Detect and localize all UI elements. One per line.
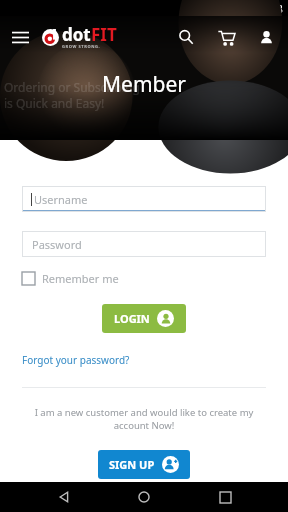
button[interactable]: SIGN UP	[98, 450, 190, 479]
staticText: SIGN UP	[109, 457, 155, 472]
button[interactable]: Remember me	[22, 271, 119, 286]
staticText: is Quick and Easy!	[4, 95, 105, 111]
button[interactable]: LOGIN	[102, 304, 186, 333]
button[interactable]: Account	[246, 17, 286, 57]
staticText: LOGIN	[114, 311, 150, 326]
staticText: 8:28	[261, 1, 283, 16]
button[interactable]: Recent apps	[208, 482, 242, 512]
staticText: Member	[102, 70, 186, 99]
staticText: Ordering or Subscribing	[4, 79, 140, 95]
button[interactable]: Password	[22, 231, 266, 257]
staticText: I am a new customer and would like to cr…	[22, 406, 266, 432]
staticText: Username	[34, 192, 88, 207]
staticText: dot	[62, 23, 91, 46]
button[interactable]: Back	[47, 482, 81, 512]
staticText: Remember me	[42, 271, 119, 286]
button[interactable]: Search	[166, 17, 206, 57]
button[interactable]: Forgot your password?	[22, 353, 130, 367]
button[interactable]: Home	[127, 482, 161, 512]
staticText: GROW STRONG.	[62, 44, 101, 49]
button[interactable]: Cart	[206, 17, 246, 57]
staticText: Password	[32, 237, 82, 252]
button[interactable]: Menu	[0, 17, 40, 57]
button[interactable]: Username	[22, 186, 266, 212]
staticText: FIT	[91, 23, 117, 46]
